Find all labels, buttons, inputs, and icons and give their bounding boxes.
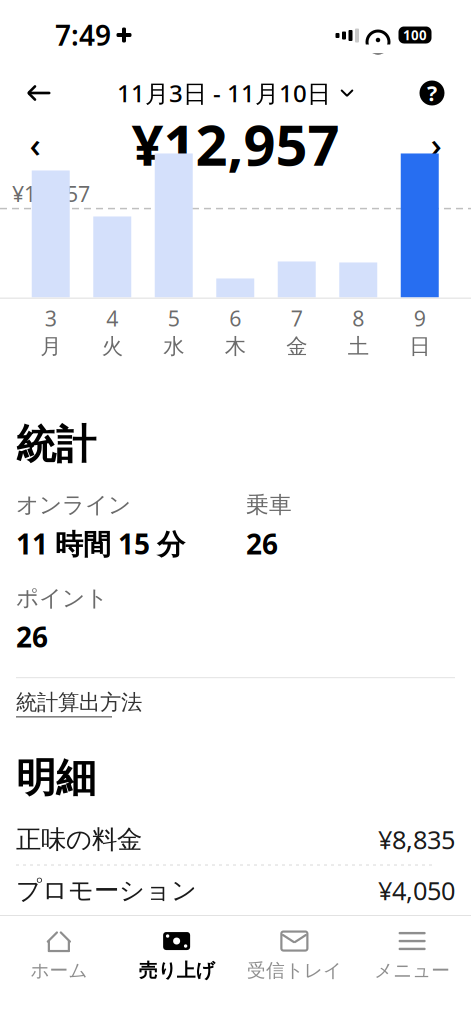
staticText: 11 時間 15 分 [16, 525, 185, 562]
button[interactable]: プロモーション [16, 865, 455, 915]
staticText: 26 [16, 618, 48, 655]
button[interactable]: ホーム [0, 928, 118, 982]
button[interactable]: チップ [16, 916, 455, 966]
staticText: 水 [163, 333, 184, 359]
staticText: 11月3日 - 11月10日 [117, 77, 331, 109]
staticText: オンライン [16, 491, 131, 519]
staticText: ¥12,957 [131, 107, 339, 181]
staticText: 6 [229, 304, 241, 332]
staticText: 9 [414, 304, 426, 332]
button[interactable]: 戻る [12, 71, 66, 115]
button[interactable]: メニュー [353, 928, 471, 982]
button[interactable]: 受信トレイ [235, 928, 353, 982]
button[interactable]: ヘルプ [405, 71, 459, 115]
staticText: 受信トレイ [247, 959, 342, 982]
button[interactable]: 統計算出方法 [16, 678, 455, 721]
staticText: ホーム [30, 959, 87, 982]
staticText: 日 [409, 333, 430, 359]
staticText: 乗車 [246, 491, 292, 519]
button[interactable]: 売り上げ [118, 928, 236, 982]
staticText: メニュー [374, 959, 450, 982]
staticText: 月 [40, 333, 61, 359]
button[interactable]: 11月3日 - 11月10日 [111, 71, 360, 115]
staticText: 統計算出方法 [16, 689, 142, 715]
staticText: 統計 [16, 420, 96, 469]
button[interactable]: 正味の料金 [16, 814, 455, 864]
staticText: 売り上げ [139, 959, 215, 982]
staticText: 明細 [16, 753, 96, 802]
staticText: 正味の料金 [16, 824, 142, 855]
staticText: 5 [168, 304, 180, 332]
staticText: ¥8,835 [378, 823, 455, 856]
staticText: ‹ [29, 121, 40, 167]
staticText: ¥72 [413, 925, 455, 958]
staticText: 7 [291, 304, 303, 332]
staticText: チップ [16, 926, 94, 957]
staticText: › [430, 121, 441, 167]
staticText: 100 [403, 26, 427, 44]
staticText: 8 [352, 304, 364, 332]
staticText: 7:49 [55, 16, 111, 54]
staticText: 26 [246, 525, 278, 562]
staticText: 火 [102, 333, 123, 359]
button[interactable]: 前の週 [8, 118, 62, 170]
staticText: プロモーション [16, 875, 197, 906]
staticText: ポイント [16, 584, 108, 612]
button[interactable]: 次の週 [409, 118, 463, 170]
staticText: 金 [286, 333, 307, 359]
staticText: 土 [348, 333, 369, 359]
staticText: 木 [225, 333, 246, 359]
staticText: ? [427, 79, 437, 107]
staticText: ¥4,050 [378, 874, 455, 907]
staticText: ¥12,957 [12, 179, 90, 208]
staticText: 3 [45, 304, 57, 332]
staticText: 4 [106, 304, 118, 332]
